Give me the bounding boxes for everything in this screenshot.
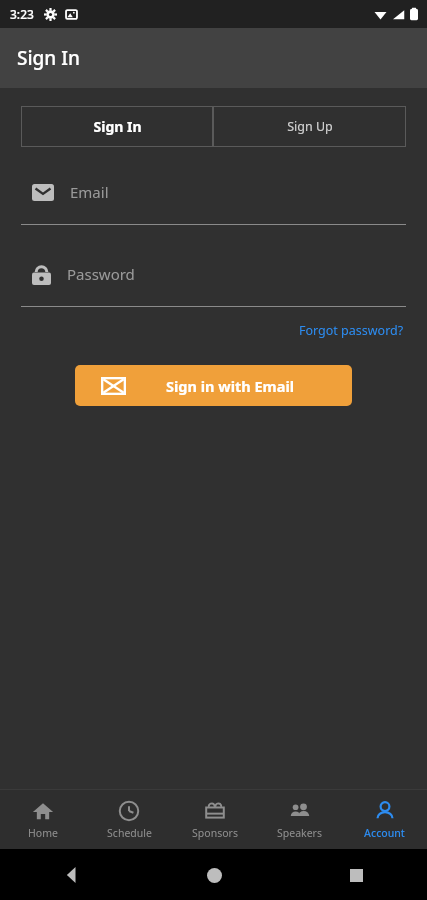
staticText: Account (364, 826, 405, 840)
staticText: Sign In (17, 45, 80, 71)
staticText: Sponsors (192, 826, 238, 840)
button[interactable]: Sign in with Email (75, 365, 352, 406)
button[interactable]: Account (342, 790, 427, 849)
staticText: Sign in with Email (166, 376, 295, 396)
button[interactable]: Sign Up (213, 106, 406, 147)
button[interactable]: Password (21, 253, 406, 295)
button[interactable]: Home (0, 790, 86, 849)
staticText: Email (70, 182, 109, 202)
button[interactable]: Speakers (257, 790, 342, 849)
button[interactable]: Back (55, 858, 89, 892)
button[interactable]: Sponsors (172, 790, 257, 849)
staticText: Password (67, 264, 135, 284)
staticText: Sign Up (287, 118, 333, 135)
staticText: Forgot password? (299, 322, 404, 339)
button[interactable]: Sign In (21, 106, 213, 147)
button[interactable]: Forgot password? (297, 319, 406, 342)
button[interactable]: Email (21, 171, 406, 213)
staticText: 3:23 (10, 6, 34, 22)
staticText: Speakers (277, 826, 322, 840)
button[interactable]: Recent apps (339, 858, 373, 892)
button[interactable]: Home (197, 858, 231, 892)
staticText: Schedule (107, 826, 152, 840)
staticText: Home (28, 826, 58, 840)
staticText: Sign In (93, 117, 142, 136)
button[interactable]: Schedule (86, 790, 172, 849)
